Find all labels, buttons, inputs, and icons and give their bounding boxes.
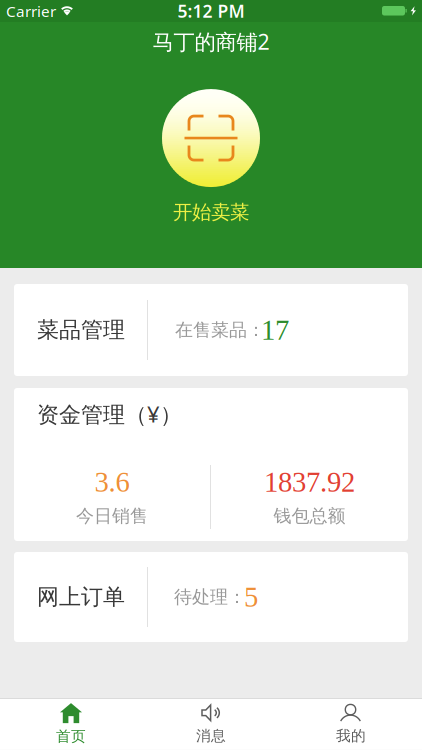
staticText: 3.6 [94,466,129,498]
button[interactable]: 我的 [281,699,421,749]
staticText: 首页 [56,727,86,746]
button[interactable]: 网上订单 [14,552,408,642]
staticText: 1837.92 [264,466,355,498]
staticText: Carrier [6,1,56,21]
staticText: 马丁的商铺2 [152,27,269,56]
staticText: 菜品管理 [37,316,125,344]
staticText: 5:12 PM [177,0,244,23]
staticText: 5 [244,581,258,613]
staticText: 17 [261,314,289,346]
button[interactable]: 菜品管理 [14,284,408,376]
staticText: 在售菜品： [175,319,265,341]
staticText: 开始卖菜 [173,200,249,225]
button[interactable]: 首页 [1,699,141,749]
staticText: 网上订单 [37,583,125,611]
staticText: 我的 [336,727,366,745]
staticText: 今日销售 [76,505,148,527]
staticText: 资金管理（¥） [37,399,182,429]
staticText: 消息 [196,727,226,745]
staticText: 待处理： [174,586,246,608]
button[interactable]: 消息 [141,699,281,749]
button[interactable]: 开始卖菜 [162,56,260,225]
button[interactable]: 资金管理（¥） [14,388,408,541]
staticText: 钱包总额 [273,505,345,527]
